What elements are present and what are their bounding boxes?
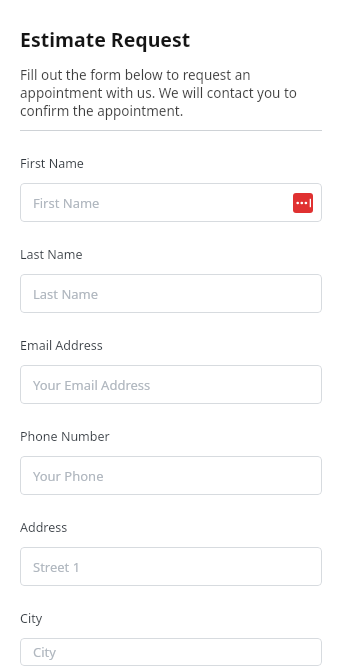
staticText: Your Phone: [33, 467, 104, 485]
staticText: Last Name: [20, 246, 83, 263]
button[interactable]: First Name: [20, 183, 322, 222]
staticText: Phone Number: [20, 428, 110, 445]
staticText: Last Name: [33, 285, 99, 303]
button[interactable]: Your Phone: [20, 456, 322, 495]
staticText: Address: [20, 519, 68, 536]
button[interactable]: Your Email Address: [20, 365, 322, 404]
staticText: First Name: [20, 155, 84, 172]
staticText: Your Email Address: [33, 376, 151, 394]
staticText: Street 1: [33, 558, 81, 576]
button[interactable]: Last Name: [20, 274, 322, 313]
staticText: City: [33, 643, 56, 661]
button[interactable]: Show suggestions: [293, 193, 313, 213]
staticText: City: [20, 610, 43, 627]
button[interactable]: City: [20, 638, 322, 666]
button[interactable]: Street 1: [20, 547, 322, 586]
staticText: Estimate Request: [20, 26, 191, 53]
staticText: First Name: [33, 194, 100, 212]
staticText: Fill out the form below to request an ap…: [20, 66, 322, 120]
staticText: Email Address: [20, 337, 103, 354]
